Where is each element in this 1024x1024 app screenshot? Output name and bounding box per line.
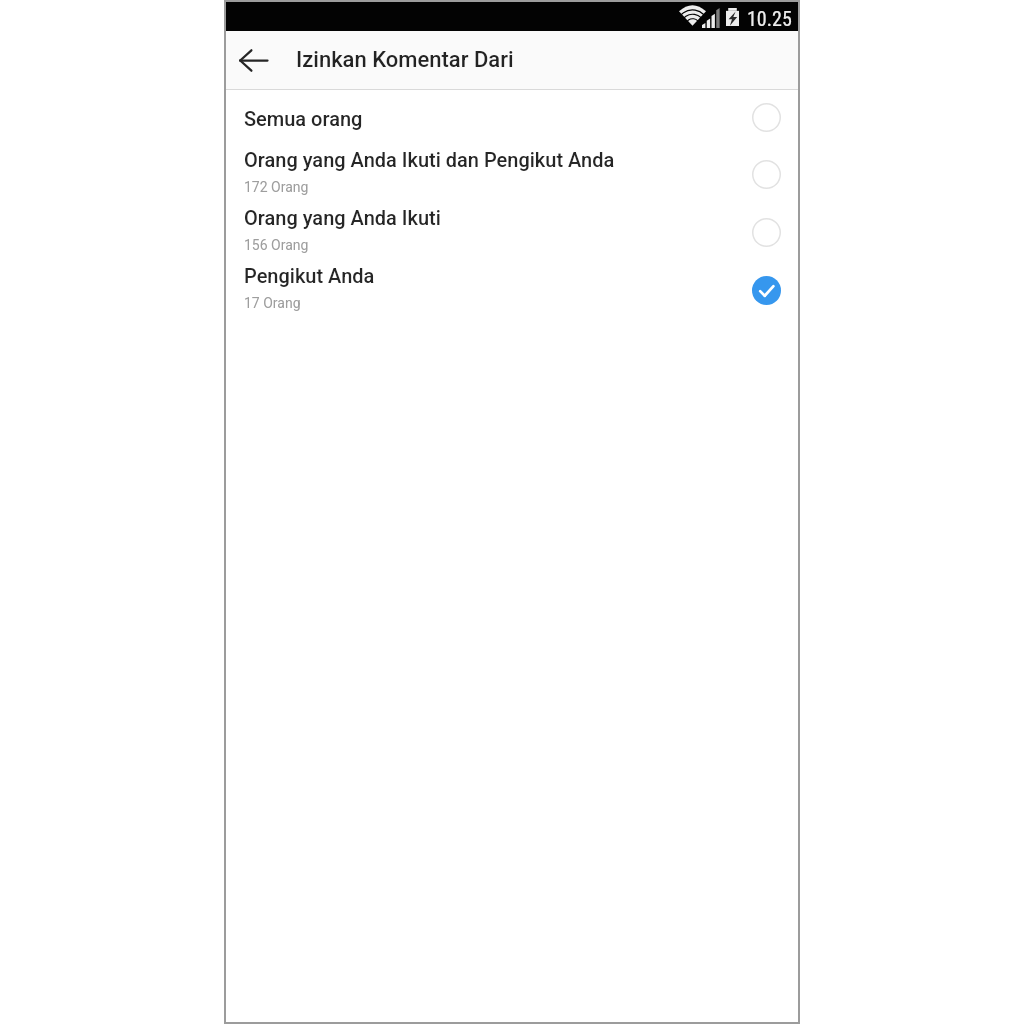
staticText: Izinkan Komentar Dari (296, 47, 514, 73)
button[interactable]: Pengikut Anda (226, 261, 798, 319)
staticText: 172 Orang (244, 179, 309, 195)
button[interactable]: Back (229, 36, 277, 84)
staticText: 156 Orang (244, 237, 309, 253)
button[interactable]: Semua orang (226, 90, 798, 145)
staticText: 17 Orang (244, 295, 301, 311)
staticText: Semua orang (244, 107, 363, 130)
staticText: Pengikut Anda (244, 264, 375, 287)
staticText: Orang yang Anda Ikuti dan Pengikut Anda (244, 148, 615, 171)
button[interactable]: Orang yang Anda Ikuti dan Pengikut Anda (226, 145, 798, 203)
staticText: 10.25 (747, 7, 792, 30)
button[interactable]: Orang yang Anda Ikuti (226, 203, 798, 261)
staticText: Orang yang Anda Ikuti (244, 206, 441, 229)
